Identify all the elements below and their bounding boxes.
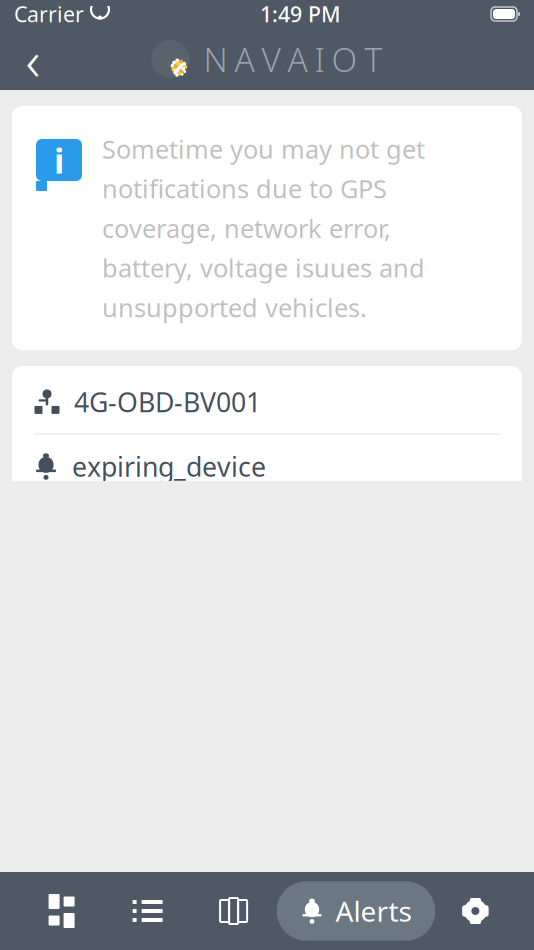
- staticText: A: [234, 37, 254, 81]
- staticText: expiring_device: [72, 449, 266, 484]
- staticText: 1:49 PM: [260, 0, 341, 28]
- staticText: A: [287, 37, 307, 81]
- staticText: Alerts: [335, 892, 411, 930]
- button[interactable]: Alerts: [277, 881, 435, 941]
- button[interactable]: Dashboard: [19, 880, 105, 942]
- staticText: Carrier: [14, 0, 84, 28]
- staticText: ‹: [25, 22, 40, 96]
- button[interactable]: Back: [6, 32, 60, 86]
- staticText: 4G-OBD-BV001: [74, 384, 261, 420]
- button[interactable]: Settings: [435, 880, 515, 942]
- staticText: Sometime you may not get notifications d…: [102, 132, 425, 324]
- staticText: i: [54, 137, 64, 183]
- staticText: T: [364, 37, 382, 81]
- staticText: V: [261, 37, 280, 81]
- button[interactable]: 4G-OBD-BV001: [12, 366, 522, 547]
- button[interactable]: Map: [191, 880, 277, 942]
- staticText: O: [331, 37, 357, 81]
- button[interactable]: List: [105, 880, 191, 942]
- staticText: I: [314, 37, 324, 81]
- staticText: N: [203, 37, 227, 81]
